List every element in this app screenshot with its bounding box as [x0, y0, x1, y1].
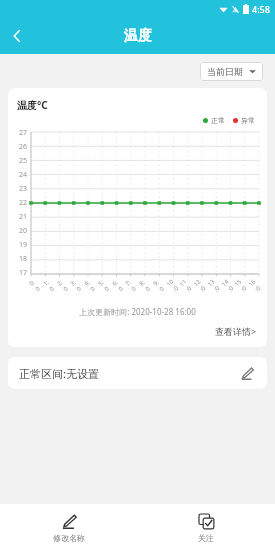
staticText: 4:58: [252, 3, 270, 15]
staticText: 0:0: [26, 277, 43, 294]
button[interactable]: 修改名称: [0, 504, 137, 550]
staticText: 异常: [241, 116, 255, 125]
staticText: 15:0: [232, 277, 249, 294]
staticText: 21: [19, 212, 28, 222]
staticText: 3:0: [67, 277, 84, 294]
staticText: 19: [19, 240, 28, 250]
staticText: 18: [19, 254, 28, 264]
staticText: 4:0: [81, 277, 98, 294]
staticText: 当前日期: [207, 66, 243, 77]
staticText: 7:0: [122, 277, 139, 294]
staticText: 25: [19, 156, 28, 166]
staticText: 2:0: [54, 277, 71, 294]
button[interactable]: 当前日期: [200, 62, 263, 81]
button[interactable]: 正常区间:无设置: [8, 357, 267, 389]
staticText: 9:0: [150, 277, 167, 294]
staticText: 5:0: [95, 277, 112, 294]
staticText: 22: [19, 198, 28, 208]
staticText: 温度°C: [17, 98, 48, 112]
staticText: 正常: [211, 116, 225, 125]
staticText: 12:0: [191, 277, 208, 294]
staticText: 查看详情>: [215, 325, 257, 337]
staticText: 24: [19, 170, 28, 180]
staticText: 26: [19, 142, 28, 152]
staticText: 关注: [198, 533, 214, 543]
staticText: 10:0: [164, 277, 181, 294]
staticText: 1:0: [40, 277, 57, 294]
button[interactable]: 查看详情>: [205, 323, 267, 339]
staticText: 温度: [124, 27, 152, 45]
button[interactable]: Back: [0, 19, 34, 53]
staticText: 13:0: [205, 277, 222, 294]
staticText: 11:0: [177, 277, 194, 294]
staticText: 23: [19, 184, 28, 194]
staticText: 上次更新时间: 2020-10-28 16:00: [8, 306, 267, 317]
staticText: 6:0: [109, 277, 126, 294]
button[interactable]: 关注: [137, 504, 275, 550]
staticText: 14:0: [219, 277, 236, 294]
staticText: 20: [19, 226, 28, 236]
staticText: 17: [19, 268, 28, 278]
staticText: 16:0: [246, 277, 263, 294]
staticText: 修改名称: [53, 533, 85, 543]
staticText: 正常区间:无设置: [19, 366, 99, 381]
staticText: 27: [19, 128, 28, 138]
staticText: 8:0: [136, 277, 153, 294]
other: Edit: [238, 364, 256, 382]
